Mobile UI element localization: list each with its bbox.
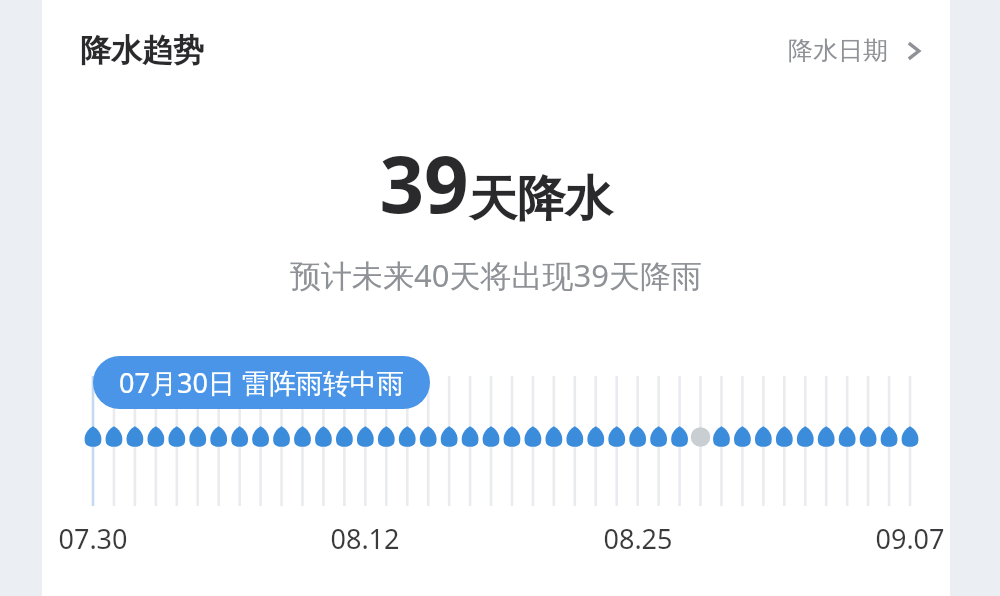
- staticText: 预计未来40天将出现39天降雨: [290, 254, 702, 296]
- staticText: 08.25: [603, 520, 673, 557]
- staticText: 08.12: [330, 520, 400, 557]
- staticText: 07.30: [58, 520, 128, 557]
- staticText: 39: [379, 130, 469, 236]
- staticText: 09.07: [875, 520, 945, 557]
- staticText: 天降水: [469, 169, 613, 229]
- button[interactable]: 07月30日 雷阵雨转中雨: [93, 356, 430, 409]
- button[interactable]: 降水日期: [788, 35, 924, 66]
- button[interactable]: 降水趋势: [80, 31, 204, 70]
- staticText: 07月30日 雷阵雨转中雨: [119, 364, 404, 401]
- other: Precipitation dates: [904, 36, 924, 66]
- staticText: 降水趋势: [80, 31, 204, 70]
- staticText: 降水日期: [788, 35, 888, 66]
